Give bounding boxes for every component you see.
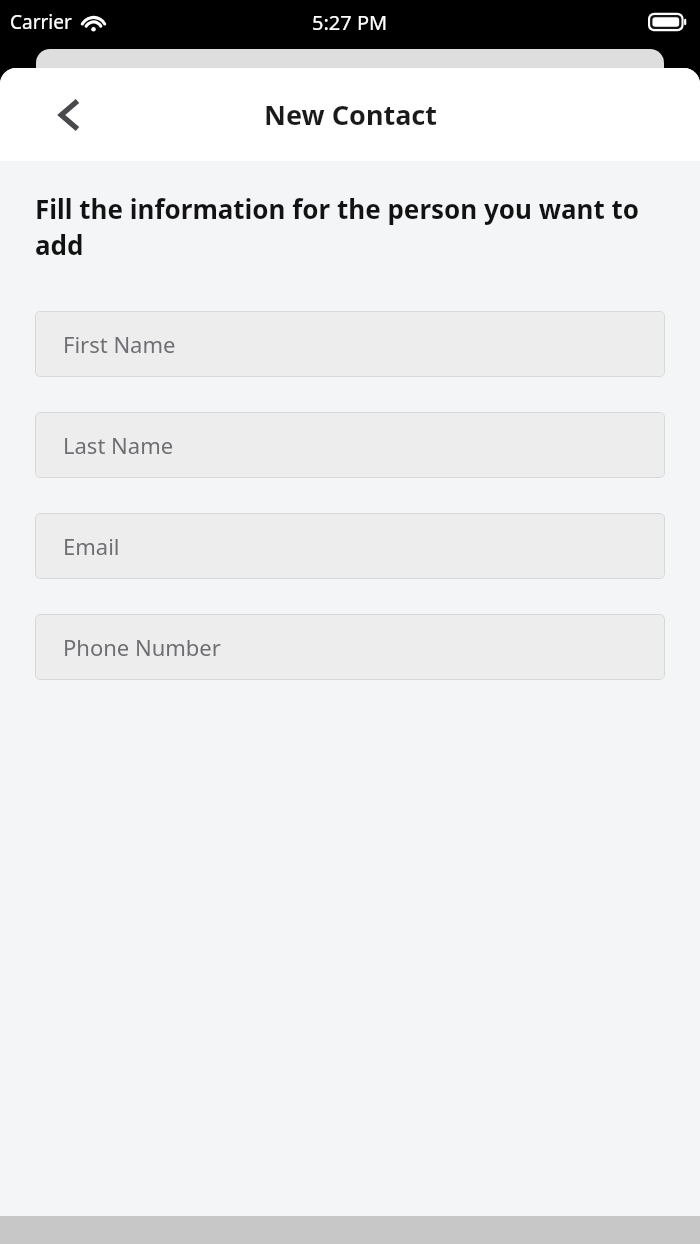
button[interactable]: Last Name <box>35 412 665 478</box>
staticText: Carrier <box>10 9 72 35</box>
staticText: Email <box>63 531 120 561</box>
button[interactable]: Back <box>40 87 96 143</box>
button[interactable]: First Name <box>35 311 665 377</box>
button[interactable]: Email <box>35 513 665 579</box>
staticText: 5:27 PM <box>312 9 388 36</box>
staticText: New Contact <box>264 96 437 133</box>
staticText: First Name <box>63 329 176 359</box>
staticText: Fill the information for the person you … <box>35 191 665 263</box>
button[interactable]: Phone Number <box>35 614 665 680</box>
staticText: Last Name <box>63 430 174 460</box>
staticText: Phone Number <box>63 632 221 662</box>
